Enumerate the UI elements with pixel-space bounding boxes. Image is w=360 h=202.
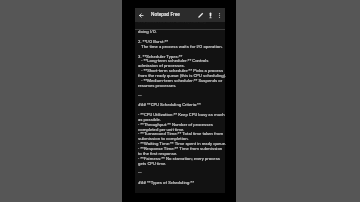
staticText: --- <box>138 93 142 98</box>
staticText: gets CPU time. <box>138 161 167 166</box>
staticText: - **Response Time:** Time from submissio… <box>138 146 223 151</box>
button[interactable]: Voice input <box>206 8 214 22</box>
staticText: - **Turnaround Time:** Total time taken … <box>138 131 224 136</box>
staticText: 3. **Scheduler Types:** <box>138 54 183 59</box>
staticText: ### **Types of Scheduling:** <box>138 180 194 185</box>
staticText: --- <box>138 170 142 175</box>
staticText: of a process that is actively running <box>138 19 206 24</box>
staticText: to the first response. <box>138 151 178 156</box>
button[interactable]: More options <box>215 8 223 22</box>
staticText: - **Throughput:** Number of processes <box>138 122 214 127</box>
staticText: - **Short-term scheduler:** Picks a proc… <box>138 68 224 73</box>
staticText: 2. **I/O Burst:** <box>138 39 169 44</box>
staticText: - **Medium-term scheduler:** Suspends or <box>138 78 223 83</box>
staticText: doing I/O. <box>138 29 157 34</box>
staticText: - **Fairness:** No starvation; every pro… <box>138 156 221 161</box>
staticText: ### **CPU Scheduling Criteria:** <box>138 102 201 107</box>
staticText: - **CPU Utilization:** Keep CPU busy as … <box>138 112 225 117</box>
staticText: as possible. <box>138 117 161 122</box>
staticText: completed per unit time. <box>138 127 185 132</box>
staticText: - **Long-term scheduler:** Controls <box>138 58 209 63</box>
button[interactable]: Back <box>137 8 146 22</box>
staticText: submission to completion. <box>138 136 189 141</box>
staticText: - **Waiting Time:** Time spent in ready … <box>138 141 227 146</box>
staticText: Notepad Free <box>151 12 180 18</box>
staticText: admission of processes. <box>138 63 185 68</box>
button[interactable]: Edit <box>195 8 205 22</box>
staticText: resumes processes. <box>138 83 177 88</box>
staticText: 1. **CPU Burst:** The time interval <box>138 15 204 20</box>
staticText: from the ready queue (this is CPU schedu… <box>138 73 227 78</box>
staticText: The time a process waits for I/O operati… <box>138 44 223 49</box>
